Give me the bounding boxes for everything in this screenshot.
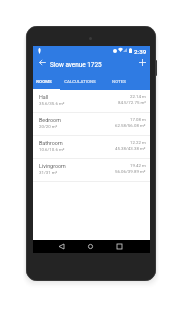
button[interactable]: ROOMS [33,74,55,90]
button[interactable]: Home [84,240,96,253]
staticText: NOTES [112,79,126,84]
staticText: CALCULATIONS [64,79,96,84]
button[interactable]: Back [55,240,67,253]
staticText: 62.58/56.08 m² [115,123,146,128]
staticText: ROOMS [36,79,52,84]
staticText: Hall [39,94,49,100]
button[interactable]: Bathroom [33,136,150,159]
staticText: 17.08 m [130,117,146,122]
button[interactable]: Hall [33,90,150,113]
staticText: 84.5/72.75 m² [118,100,146,105]
button[interactable]: Navigate up [36,56,49,69]
staticText: Bedroom [39,117,61,123]
staticText: 35.6/35.6 m² [39,101,65,106]
staticText: 19.42 m [130,163,146,168]
button[interactable]: NOTES [105,74,132,90]
staticText: 2:39 [134,48,147,55]
staticText: Slow avenue 1725 [50,61,102,69]
staticText: 31/31 m² [39,170,58,175]
button[interactable]: CALCULATIONS [55,74,105,90]
button[interactable]: Livingroom [33,159,150,182]
button[interactable]: Add [136,56,149,69]
button[interactable]: Recent apps [113,240,125,253]
staticText: Bathroom [39,140,63,146]
staticText: 10.6/10.6 m² [39,147,65,152]
staticText: 45.38/43.38 m² [115,146,146,151]
staticText: 56.06/39.89 m² [115,169,146,174]
staticText: Livingroom [39,163,66,169]
staticText: 22.14 m [130,94,146,99]
staticText: 20/20 m² [39,124,58,129]
button[interactable]: Bedroom [33,113,150,136]
staticText: 12.22 m [130,140,146,145]
